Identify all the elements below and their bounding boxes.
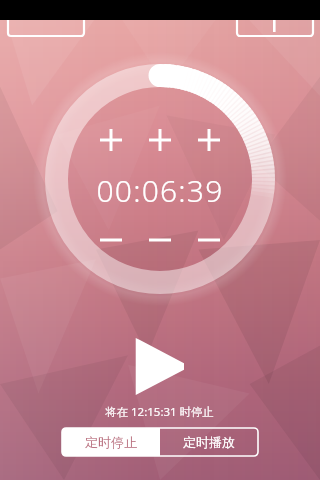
button[interactable]: 定时停止 xyxy=(62,428,160,456)
button[interactable]: Decrease minutes xyxy=(148,228,172,252)
button[interactable]: Play xyxy=(131,336,189,396)
staticText: 将在 12:15:31 时停止 xyxy=(105,404,215,420)
button[interactable]: 定时播放 xyxy=(160,428,258,456)
button[interactable]: Increase seconds xyxy=(197,128,221,152)
staticText: 定时停止 xyxy=(85,434,137,450)
button[interactable]: Decrease seconds xyxy=(197,228,221,252)
button[interactable]: Increase minutes xyxy=(148,128,172,152)
button[interactable]: Increase hours xyxy=(99,128,123,152)
staticText: 00:06:39 xyxy=(96,170,224,211)
button[interactable]: Decrease hours xyxy=(99,228,123,252)
staticText: 定时播放 xyxy=(183,434,235,450)
